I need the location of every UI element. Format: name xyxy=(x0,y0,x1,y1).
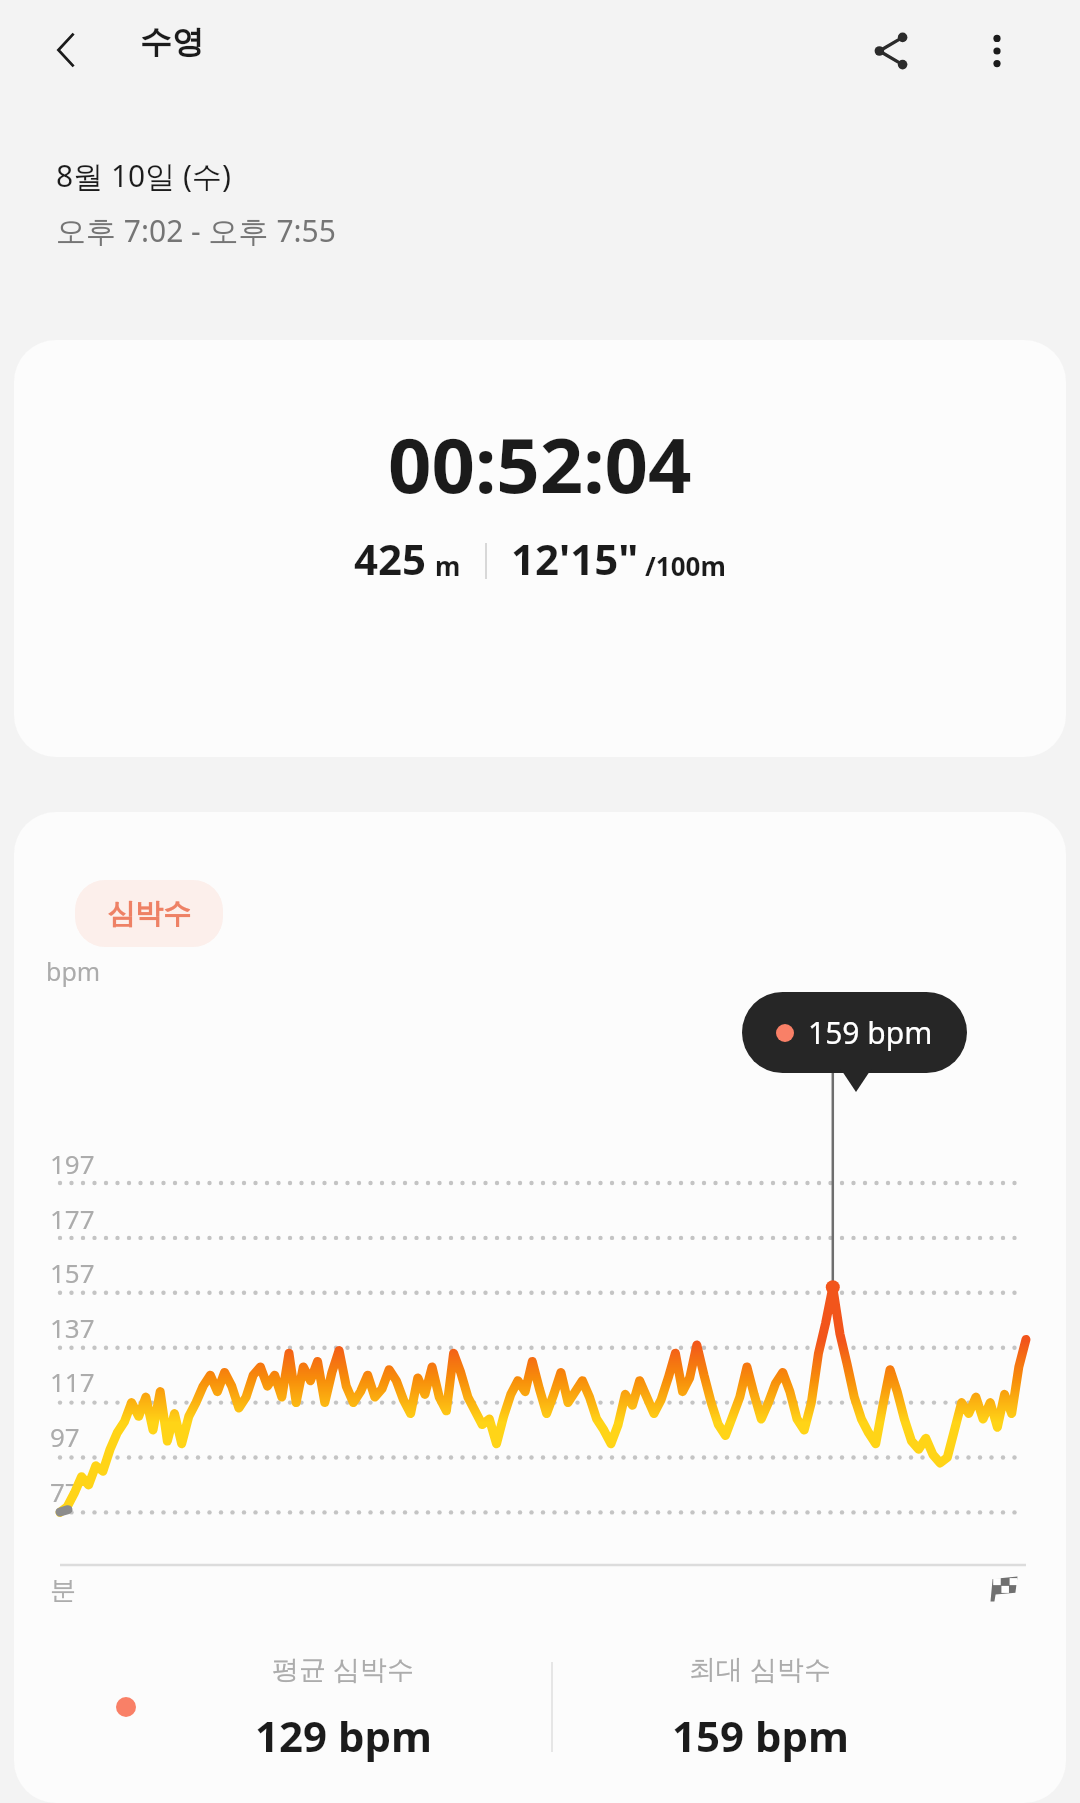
staticText: bpm xyxy=(46,954,101,988)
button[interactable]: Share xyxy=(852,12,930,90)
button[interactable]: 00:52:04 xyxy=(14,340,1066,757)
button[interactable]: Finish xyxy=(976,1560,1032,1616)
staticText: 분 xyxy=(50,1574,76,1607)
staticText: 159 bpm xyxy=(808,1012,933,1053)
button[interactable]: More options xyxy=(958,12,1036,90)
staticText: 오후 7:02 - 오후 7:55 xyxy=(56,210,336,251)
staticText: /100m xyxy=(645,548,726,583)
staticText: 159 bpm xyxy=(672,1707,850,1764)
staticText: 197 xyxy=(50,1146,95,1181)
button[interactable]: 159 bpm xyxy=(742,992,967,1073)
staticText: 77 xyxy=(50,1474,80,1509)
button[interactable]: Back xyxy=(30,14,102,86)
staticText: 수영 xyxy=(140,22,204,62)
staticText: m xyxy=(435,548,461,583)
staticText: 00:52:04 xyxy=(388,412,692,516)
staticText: 평균 심박수 xyxy=(272,1650,415,1687)
button[interactable]: 수영 xyxy=(140,22,204,62)
button[interactable]: 심박수 xyxy=(75,880,223,947)
staticText: 177 xyxy=(50,1201,95,1236)
staticText: 최대 심박수 xyxy=(689,1650,832,1687)
staticText: 8월 10일 (수) xyxy=(56,155,232,196)
staticText: 심박수 xyxy=(107,896,191,931)
staticText: 129 bpm xyxy=(255,1707,433,1764)
staticText: 157 xyxy=(50,1255,95,1290)
staticText: 117 xyxy=(50,1364,95,1399)
staticText: 12'15" xyxy=(511,530,639,587)
staticText: 137 xyxy=(50,1310,95,1345)
staticText: 97 xyxy=(50,1419,80,1454)
staticText: 425 xyxy=(354,530,427,587)
